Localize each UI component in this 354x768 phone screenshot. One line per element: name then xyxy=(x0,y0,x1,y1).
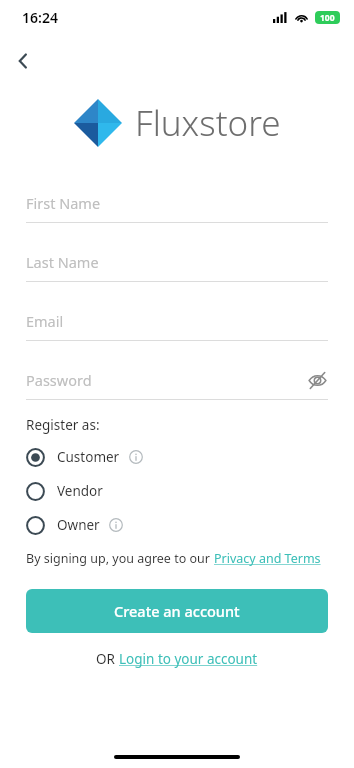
button[interactable]: Customer info xyxy=(128,449,144,465)
staticText: Email xyxy=(26,311,328,331)
button[interactable]: Password xyxy=(26,367,328,400)
button[interactable]: Owner xyxy=(26,508,328,542)
staticText: Fluxstore xyxy=(135,99,281,147)
button[interactable]: First Name xyxy=(26,190,328,223)
staticText: 100 xyxy=(320,12,335,24)
staticText: First Name xyxy=(26,193,328,213)
staticText: Create an account xyxy=(114,601,240,621)
staticText: Login to your account xyxy=(119,650,258,668)
button[interactable]: Owner info xyxy=(108,517,124,533)
staticText: OR xyxy=(96,650,119,668)
button[interactable]: Create an account xyxy=(26,589,328,633)
staticText: Vendor xyxy=(57,482,103,500)
button[interactable]: Email xyxy=(26,308,328,341)
button[interactable]: Show password xyxy=(306,369,328,391)
button[interactable]: Last Name xyxy=(26,249,328,282)
button[interactable]: Back xyxy=(4,42,42,80)
staticText: Customer xyxy=(57,448,120,466)
staticText: Password xyxy=(26,370,306,390)
button[interactable]: Privacy and Terms xyxy=(214,550,321,567)
staticText: By signing up, you agree to our xyxy=(26,550,214,567)
button[interactable]: Customer xyxy=(26,440,328,474)
staticText: Privacy and Terms xyxy=(214,550,321,567)
staticText: Register as: xyxy=(26,416,100,434)
button[interactable]: Vendor xyxy=(26,474,328,508)
staticText: Last Name xyxy=(26,252,328,272)
staticText: 16:24 xyxy=(22,8,58,27)
button[interactable]: Login to your account xyxy=(119,650,258,668)
staticText: Owner xyxy=(57,516,100,534)
